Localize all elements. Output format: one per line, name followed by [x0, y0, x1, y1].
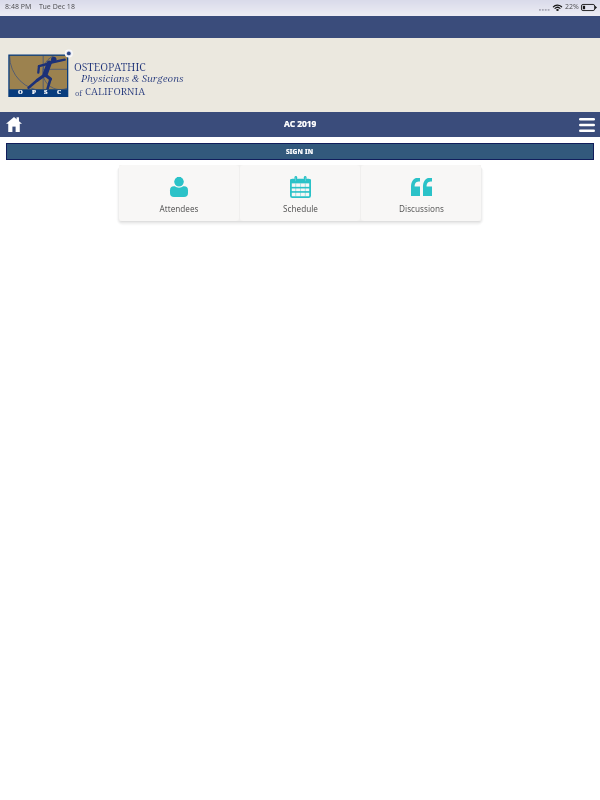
staticText: S — [44, 88, 48, 96]
staticText: OSTEOPATHIC — [74, 60, 146, 74]
staticText: AC 2019 — [284, 118, 317, 129]
staticText: C — [57, 88, 62, 96]
button[interactable]: Discussions — [361, 165, 481, 221]
staticText: Attendees — [159, 203, 199, 214]
button[interactable]: SIGN IN — [7, 144, 593, 159]
staticText: P — [32, 88, 36, 96]
staticText: Tue Dec 18 — [39, 2, 75, 12]
staticText: Physicians & Surgeons — [81, 72, 184, 85]
staticText: SIGN IN — [286, 147, 314, 156]
staticText: O — [18, 88, 23, 96]
staticText: Discussions — [399, 203, 444, 214]
button[interactable]: Home — [0, 112, 27, 137]
button[interactable]: Schedule — [240, 165, 360, 221]
staticText: 22% — [565, 2, 579, 12]
staticText: CALIFORNIA — [85, 85, 146, 98]
staticText: Schedule — [283, 203, 318, 214]
staticText: 8:48 PM — [5, 2, 32, 12]
button[interactable]: Attendees — [119, 165, 239, 221]
staticText: of — [75, 88, 85, 98]
button[interactable]: Menu — [574, 112, 600, 137]
